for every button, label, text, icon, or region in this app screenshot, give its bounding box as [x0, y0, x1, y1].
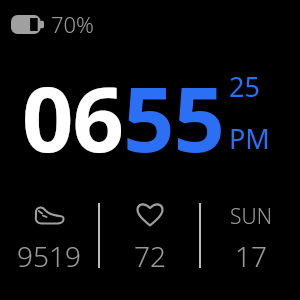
staticText: 06 [22, 56, 123, 179]
button[interactable]: Battery 70 percent [10, 6, 95, 42]
staticText: 55 [123, 56, 224, 179]
staticText: 72 [134, 237, 166, 274]
staticText: 25 [229, 68, 260, 105]
button[interactable]: Date Sunday 17 [201, 198, 300, 274]
button[interactable]: Steps 9519 [0, 198, 98, 274]
staticText: 17 [235, 237, 267, 274]
button[interactable]: Heart rate 72 [100, 198, 199, 274]
staticText: 70% [51, 9, 94, 39]
button[interactable]: 06 [22, 56, 270, 179]
staticText: PM [229, 120, 270, 157]
staticText: 9519 [17, 237, 81, 274]
staticText: SUN [230, 202, 272, 227]
